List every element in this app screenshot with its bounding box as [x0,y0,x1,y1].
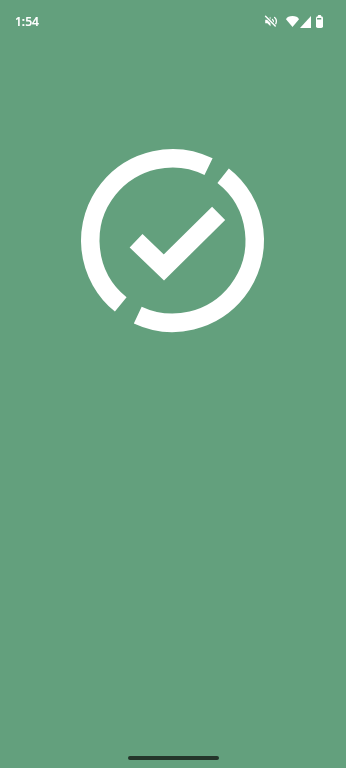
other: App logo [81,149,264,332]
staticText: 1:54 [15,13,39,29]
other: Sound off [265,16,276,27]
other: Mobile signal [300,16,311,28]
other: Battery [316,15,323,28]
other: Wi-Fi [286,15,299,27]
